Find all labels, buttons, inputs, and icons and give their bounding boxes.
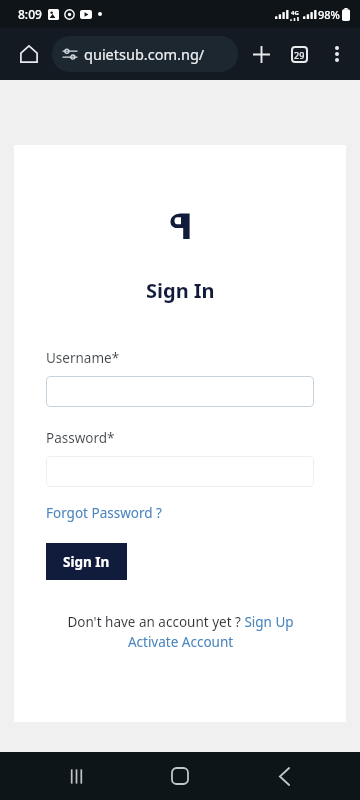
staticText: Don't have an account yet ? Sign Up Acti… [67, 613, 294, 651]
button[interactable]: More options [318, 35, 356, 73]
button[interactable]: Username field [46, 376, 314, 407]
staticText: quietsub.com.ng/vpa [84, 44, 227, 64]
button[interactable]: Recent apps [48, 752, 104, 800]
button[interactable]: Forgot Password ? [46, 504, 162, 522]
button[interactable]: Home [152, 752, 208, 800]
staticText: Sign In [146, 277, 215, 304]
staticText: Password* [46, 429, 115, 447]
button[interactable]: Password field [46, 456, 314, 487]
staticText: 4G [291, 9, 299, 17]
staticText: Username* [46, 349, 120, 367]
button[interactable]: quietsub.com.ng/vpa [52, 36, 238, 72]
button[interactable]: Back [256, 752, 312, 800]
staticText: 8:09 [18, 6, 42, 22]
staticText: Sign In [63, 553, 110, 571]
staticText: 29 [294, 49, 305, 61]
staticText: Forgot Password ? [46, 504, 162, 522]
button[interactable]: Tabs: 29 [280, 35, 318, 73]
button[interactable]: Home [12, 37, 46, 71]
staticText: 98% [318, 7, 340, 22]
button[interactable]: New tab [242, 35, 280, 73]
button[interactable]: Sign In [46, 543, 127, 580]
